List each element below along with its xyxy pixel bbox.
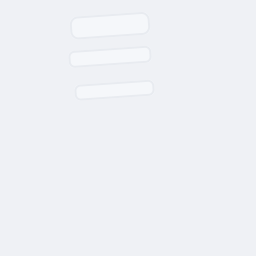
button[interactable]: Row 1 <box>70 14 150 37</box>
button[interactable]: Row 3 <box>74 82 154 98</box>
button[interactable]: Row 2 <box>68 48 151 65</box>
